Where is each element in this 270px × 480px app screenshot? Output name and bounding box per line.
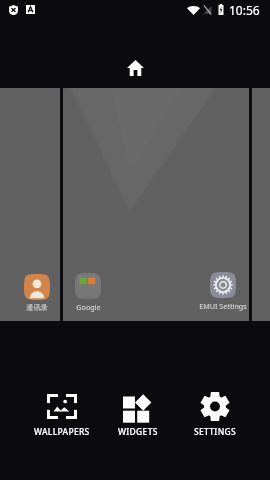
button[interactable]: WALLPAPERS bbox=[24, 390, 100, 442]
button[interactable]: Home screen bbox=[0, 59, 270, 77]
button[interactable]: Previous page bbox=[0, 88, 60, 321]
staticText: 10:56 bbox=[229, 2, 260, 18]
staticText: WIDGETS bbox=[118, 426, 158, 438]
staticText: SETTINGS bbox=[194, 426, 236, 438]
button[interactable]: Current page bbox=[63, 88, 249, 321]
button[interactable]: SETTINGS bbox=[177, 390, 253, 442]
staticText: 通讯录 bbox=[26, 303, 48, 312]
staticText: Google bbox=[76, 302, 101, 312]
button[interactable]: WIDGETS bbox=[100, 390, 176, 442]
staticText: WALLPAPERS bbox=[34, 426, 90, 438]
staticText: EMUI Settings bbox=[199, 301, 247, 311]
